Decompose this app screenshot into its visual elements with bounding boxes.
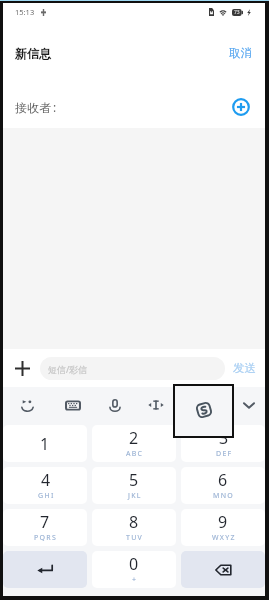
staticText: DEF (216, 449, 233, 459)
staticText: 取消 (229, 46, 252, 60)
staticText: 2 (129, 427, 139, 449)
staticText: 发送 (233, 361, 256, 375)
staticText: 短信/彩信 (48, 363, 88, 375)
staticText: TUV (126, 533, 144, 543)
staticText: 1 (40, 433, 50, 455)
button[interactable]: 短信/彩信 (40, 357, 225, 380)
staticText: 9 (218, 511, 228, 533)
button[interactable]: 1 (3, 425, 87, 462)
button[interactable]: 取消 (227, 42, 254, 64)
staticText: 15:13 (15, 7, 35, 17)
button[interactable]: 发送 (231, 357, 258, 379)
staticText: 新信息 (15, 46, 51, 61)
staticText: GHI (38, 491, 55, 501)
staticText: 8 (129, 511, 139, 533)
staticText: 接收者 : (15, 99, 57, 115)
button[interactable]: Add recipient (229, 95, 253, 119)
button[interactable]: 2 (92, 425, 176, 462)
button[interactable]: Voice input (94, 387, 135, 423)
staticText: MNO (213, 491, 235, 501)
button[interactable]: Attach (11, 357, 34, 380)
button[interactable]: Move cursor (135, 387, 177, 423)
staticText: 3 (219, 427, 229, 449)
button[interactable]: 5 (92, 467, 176, 504)
button[interactable]: 6 (181, 467, 265, 504)
staticText: WXYZ (212, 533, 236, 543)
button[interactable]: 9 (181, 509, 265, 546)
button[interactable]: 0 (92, 551, 176, 588)
button[interactable]: Enter (3, 551, 87, 588)
staticText: 4 (41, 469, 51, 491)
staticText: JKL (128, 491, 142, 501)
staticText: 5 (129, 469, 139, 491)
staticText: 73 (234, 9, 240, 16)
button[interactable]: Input method (173, 384, 234, 438)
button[interactable]: 3 (181, 425, 265, 462)
staticText: 7 (40, 511, 50, 533)
button[interactable]: 7 (3, 509, 87, 546)
staticText: + (132, 575, 137, 585)
button[interactable]: Backspace (181, 551, 265, 588)
button[interactable]: Hide keyboard (233, 387, 265, 423)
button[interactable]: 8 (92, 509, 176, 546)
staticText: PQRS (34, 533, 58, 543)
staticText: 0 (129, 553, 139, 575)
button[interactable]: Emoji (3, 387, 51, 423)
button[interactable]: 4 (3, 467, 87, 504)
button[interactable]: Keyboard layout (51, 387, 94, 423)
staticText: 6 (218, 469, 228, 491)
staticText: ABC (126, 449, 144, 459)
